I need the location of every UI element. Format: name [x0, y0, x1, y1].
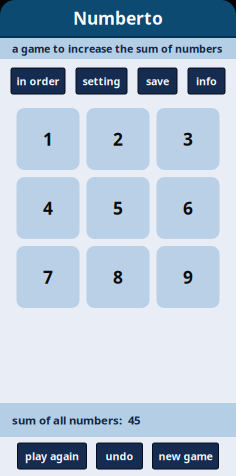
button[interactable]: in order [11, 68, 65, 94]
button[interactable]: setting [76, 68, 127, 94]
button[interactable]: 2 [86, 108, 149, 170]
staticText: sum of all numbers: 45 [12, 412, 140, 428]
button[interactable]: 5 [86, 177, 149, 239]
staticText: Numberto [73, 6, 163, 30]
button[interactable]: save [138, 68, 177, 94]
staticText: in order [16, 74, 59, 88]
button[interactable]: info [188, 68, 225, 94]
staticText: 6 [183, 196, 193, 220]
staticText: info [196, 74, 217, 88]
staticText: 4 [43, 196, 53, 220]
button[interactable]: 3 [156, 108, 219, 170]
button[interactable]: 6 [156, 177, 219, 239]
staticText: a game to increase the sum of numbers [12, 41, 222, 56]
staticText: undo [105, 449, 133, 463]
staticText: 7 [43, 265, 53, 289]
button[interactable]: 4 [16, 177, 79, 239]
staticText: 8 [113, 265, 123, 289]
staticText: setting [82, 74, 120, 88]
staticText: 9 [183, 265, 193, 289]
staticText: 3 [183, 127, 193, 151]
staticText: play again [25, 449, 79, 463]
button[interactable]: 9 [156, 246, 219, 308]
staticText: save [146, 74, 169, 88]
button[interactable]: 1 [16, 108, 79, 170]
staticText: new game [158, 449, 212, 463]
button[interactable]: 7 [16, 246, 79, 308]
button[interactable]: new game [152, 443, 218, 469]
button[interactable]: undo [96, 443, 142, 469]
button[interactable]: 8 [86, 246, 149, 308]
staticText: 2 [113, 127, 123, 151]
staticText: 1 [43, 127, 53, 151]
staticText: 5 [113, 196, 123, 220]
button[interactable]: play again [17, 443, 86, 469]
